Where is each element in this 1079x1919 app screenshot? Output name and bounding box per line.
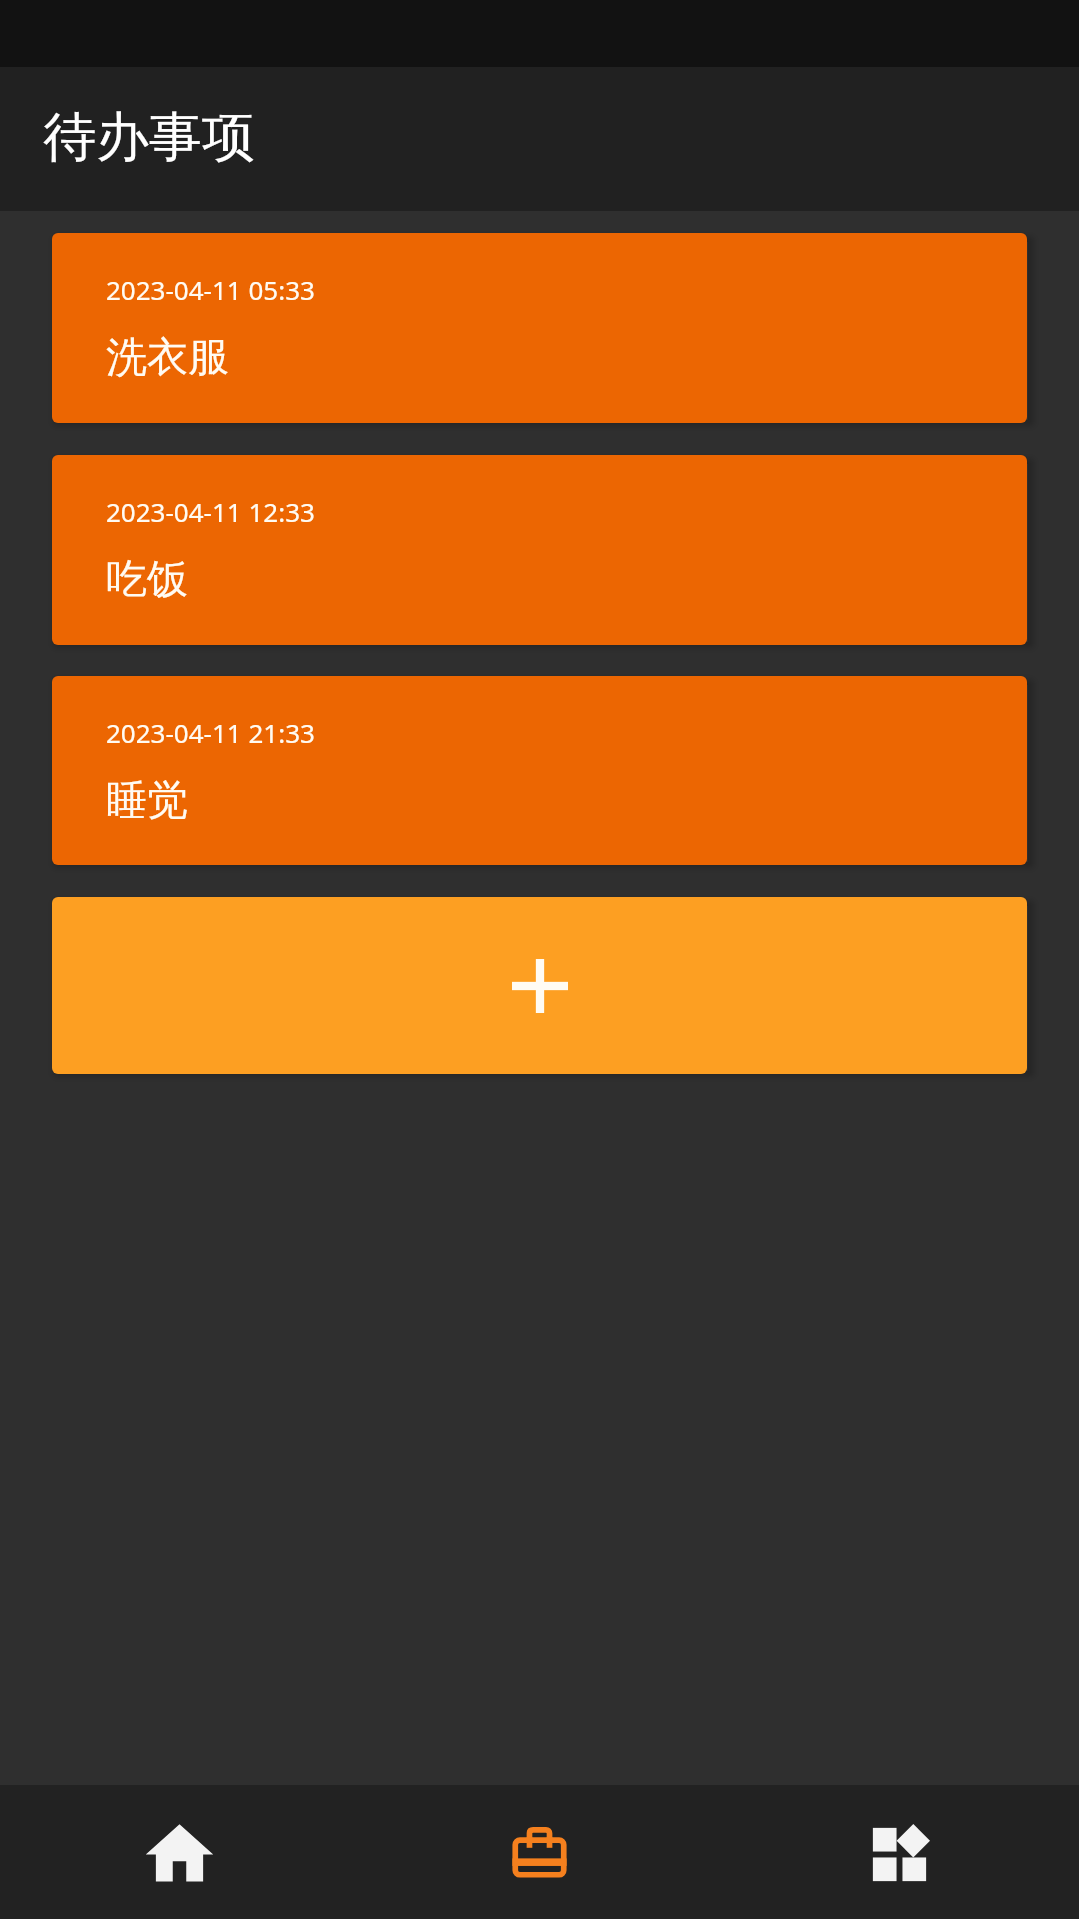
staticText: 2023-04-11 12:33: [106, 494, 315, 529]
button[interactable]: Home: [0, 1785, 359, 1919]
button[interactable]: 2023-04-11 12:33: [52, 455, 1027, 645]
staticText: 睡觉: [106, 775, 188, 827]
staticText: 吃饭: [106, 554, 188, 606]
button[interactable]: Tasks: [359, 1785, 719, 1919]
button[interactable]: Add todo: [52, 897, 1027, 1074]
button[interactable]: 2023-04-11 05:33: [52, 233, 1027, 423]
button[interactable]: Widgets: [719, 1785, 1079, 1919]
staticText: 待办事项: [43, 104, 255, 171]
staticText: 2023-04-11 05:33: [106, 272, 315, 307]
button[interactable]: 2023-04-11 21:33: [52, 676, 1027, 865]
staticText: 洗衣服: [106, 332, 229, 384]
staticText: 2023-04-11 21:33: [106, 715, 315, 750]
